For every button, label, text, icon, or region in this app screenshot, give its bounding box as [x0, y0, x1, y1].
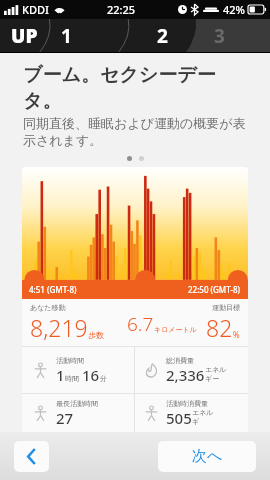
staticText: 時間: [65, 374, 79, 383]
button[interactable]: 4:51 (GMT-8): [22, 167, 248, 299]
other: Calories: [143, 362, 160, 379]
staticText: 6.7: [127, 311, 154, 337]
button[interactable]: UP: [0, 19, 49, 53]
staticText: 2: [157, 23, 168, 49]
staticText: 22:50 (GMT-8): [188, 284, 241, 295]
staticText: 同期直後、睡眠および運動の概要が表示されます。: [23, 115, 252, 149]
staticText: UP: [11, 23, 38, 49]
staticText: 8,219: [30, 312, 88, 343]
staticText: 歩数: [88, 330, 104, 340]
button[interactable]: Active time: [22, 347, 134, 393]
button[interactable]: 2: [128, 19, 196, 53]
staticText: 次へ: [192, 447, 223, 466]
button[interactable]: あなた移動: [22, 299, 248, 346]
other: Longest activity: [32, 405, 49, 422]
button[interactable]: Calories: [135, 347, 248, 393]
staticText: 運動目標: [212, 303, 240, 312]
staticText: KDDI: [22, 2, 49, 17]
staticText: 1: [56, 365, 65, 385]
staticText: 82: [206, 312, 233, 343]
staticText: 16: [82, 365, 100, 385]
staticText: 活動時消費量: [166, 399, 208, 408]
staticText: エネル ギー: [205, 365, 233, 383]
button[interactable]: 次へ: [158, 441, 256, 472]
staticText: 3: [214, 23, 225, 49]
staticText: キロメートル: [154, 325, 197, 334]
staticText: エネルギ: [192, 408, 220, 426]
staticText: あなた移動: [30, 303, 66, 312]
button[interactable]: Longest activity: [22, 394, 134, 432]
other: Active time: [32, 362, 49, 379]
other: Active calories: [143, 405, 160, 422]
button[interactable]: Back: [14, 441, 49, 472]
staticText: 505: [166, 408, 192, 428]
staticText: 27: [56, 408, 74, 428]
staticText: 2,336: [166, 365, 205, 385]
staticText: ブーム。セクシーデータ。: [23, 63, 252, 112]
staticText: 4:51 (GMT-8): [29, 284, 77, 295]
staticText: 活動時間: [56, 356, 84, 365]
staticText: 22:25: [107, 2, 136, 17]
button[interactable]: Active calories: [135, 394, 248, 432]
staticText: 1: [61, 23, 72, 49]
button[interactable]: 1: [49, 19, 128, 53]
staticText: 分: [100, 374, 107, 383]
staticText: %: [233, 329, 240, 340]
button[interactable]: 3: [196, 19, 270, 53]
staticText: 総消費量: [166, 356, 194, 365]
staticText: 42%: [223, 2, 245, 17]
staticText: 最長活動時間: [56, 399, 98, 408]
